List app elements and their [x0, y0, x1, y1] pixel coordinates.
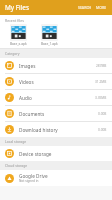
- button[interactable]: MORE: [94, 2, 109, 13]
- button[interactable]: SEARCH: [76, 2, 94, 13]
- staticText: Recent files: [5, 18, 24, 23]
- staticText: Category: [5, 51, 20, 56]
- staticText: 287MB: [96, 64, 107, 68]
- staticText: SEARCH: [78, 5, 92, 10]
- button[interactable]: Audio: [0, 90, 112, 105]
- button[interactable]: Device storage: [0, 146, 112, 161]
- button[interactable]: Google Drive: [0, 170, 112, 186]
- staticText: Audio: [19, 95, 32, 101]
- staticText: 0.00B: [98, 112, 107, 116]
- staticText: 31.2MB: [95, 80, 107, 84]
- staticText: Videos: [19, 79, 34, 85]
- staticText: MORE: [96, 5, 107, 10]
- staticText: 3.35MB: [95, 96, 107, 100]
- button[interactable]: Images: [0, 58, 112, 73]
- staticText: Cloud storage: [5, 163, 28, 168]
- staticText: Images: [19, 63, 36, 69]
- staticText: Local storage: [5, 139, 27, 144]
- button[interactable]: Download history: [0, 122, 112, 137]
- staticText: Device storage: [19, 151, 52, 157]
- button[interactable]: Base_1.apk: [37, 24, 61, 46]
- staticText: My Files: [5, 3, 29, 12]
- button[interactable]: Documents: [0, 106, 112, 121]
- button[interactable]: Videos: [0, 74, 112, 89]
- staticText: Google Drive: [19, 173, 48, 179]
- staticText: Documents: [19, 111, 45, 117]
- button[interactable]: Base_x.apk: [6, 24, 30, 46]
- staticText: Download history: [19, 127, 58, 133]
- button[interactable]: My Files: [5, 3, 29, 12]
- staticText: Base_1.apk: [41, 42, 58, 46]
- staticText: Not signed in: [19, 179, 39, 183]
- staticText: 0.00B: [98, 128, 107, 132]
- staticText: Base_x.apk: [10, 42, 27, 46]
